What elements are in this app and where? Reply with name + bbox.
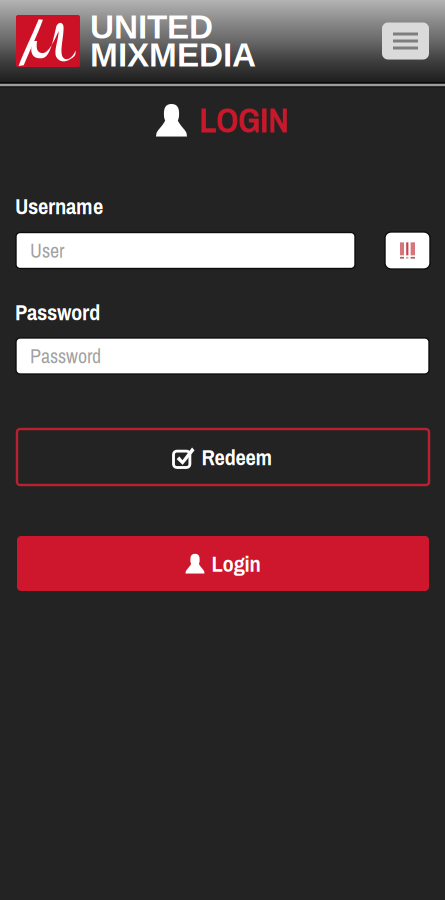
button[interactable]: Login (17, 536, 429, 591)
button[interactable]: Scan barcode (385, 232, 430, 269)
staticText: LOGIN (199, 97, 289, 143)
staticText: UNITED (90, 8, 213, 46)
staticText: MIXMEDIA (90, 36, 256, 74)
button[interactable]: Menu (382, 22, 429, 59)
button[interactable]: Redeem (17, 429, 429, 485)
staticText: Username (15, 191, 103, 221)
staticText: Login (211, 548, 260, 579)
staticText: Redeem (201, 442, 272, 472)
staticText: User (30, 237, 64, 264)
staticText: Password (15, 297, 100, 327)
staticText: Password (30, 342, 101, 369)
